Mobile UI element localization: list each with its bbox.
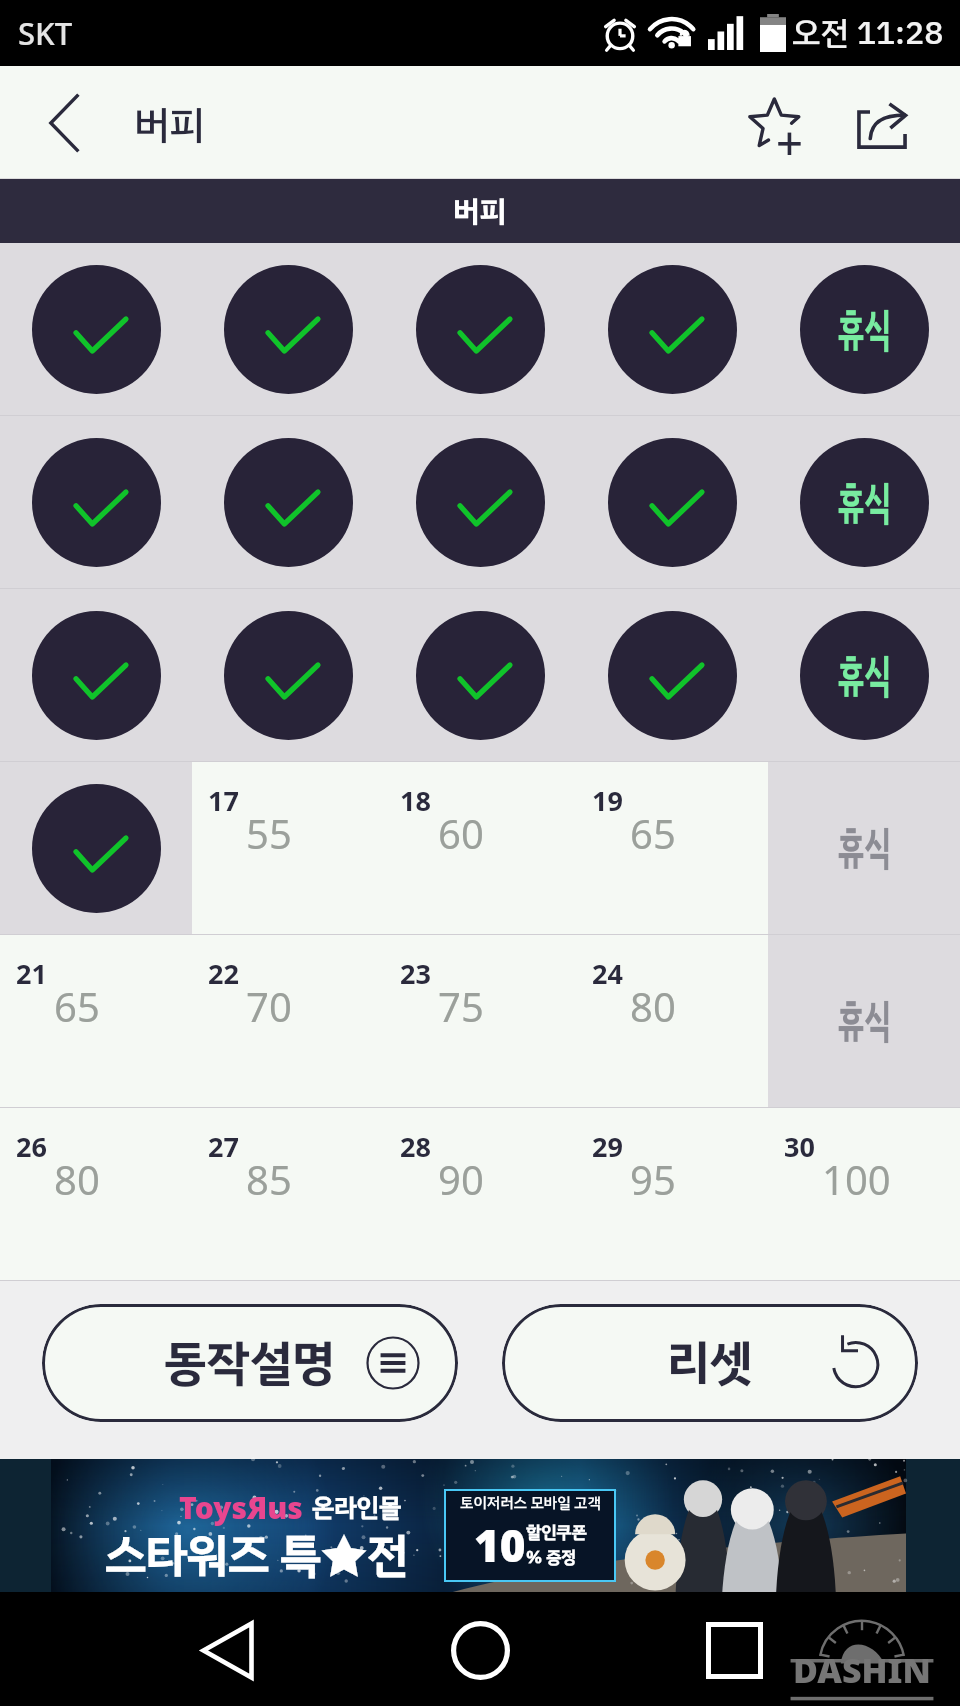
button[interactable]: 29 [576,1108,768,1280]
button[interactable]: 26 [0,1108,192,1280]
staticText: 75 [438,979,484,1033]
button[interactable] [384,416,576,588]
button[interactable]: 휴식 [768,935,960,1107]
button[interactable] [0,243,192,415]
button[interactable] [576,589,768,761]
staticText: 60 [438,806,484,860]
button[interactable] [0,589,192,761]
button[interactable]: 휴식 [768,589,960,761]
staticText: 버피 [453,189,507,234]
staticText: 휴식 [838,814,891,882]
staticText: % 증정 [526,1545,577,1570]
staticText: 27 [208,1128,239,1165]
button[interactable]: 휴식 [768,243,960,415]
button[interactable]: Recents [684,1606,784,1695]
button[interactable]: 휴식 [768,762,960,934]
staticText: 95 [630,1152,676,1206]
staticText: 10 [474,1515,526,1575]
staticText: 18 [400,782,431,819]
button[interactable]: 동작설명 [42,1304,458,1422]
button[interactable]: 28 [384,1108,576,1280]
staticText: 28 [400,1128,431,1165]
button[interactable]: 27 [192,1108,384,1280]
button[interactable]: 휴식 [768,416,960,588]
staticText: 휴식 [838,296,891,364]
button[interactable] [192,243,384,415]
staticText: 동작설명 [164,1327,336,1399]
button[interactable] [576,243,768,415]
staticText: 26 [16,1128,47,1165]
button[interactable] [192,416,384,588]
staticText: 90 [438,1152,484,1206]
staticText: 스타워즈 특★전 [105,1521,409,1590]
staticText: 21 [16,955,47,992]
staticText: 17 [208,782,239,819]
button[interactable]: 24 [576,935,768,1107]
staticText: 할인쿠폰 [526,1520,587,1545]
staticText: 휴식 [838,642,891,710]
button[interactable]: Advertisement [0,1459,960,1592]
staticText: ToysЯus [179,1487,303,1528]
button[interactable]: 22 [192,935,384,1107]
staticText: 80 [54,1152,100,1206]
button[interactable] [384,589,576,761]
staticText: 온라인몰 [312,1489,402,1527]
button[interactable] [384,243,576,415]
button[interactable] [0,416,192,588]
button[interactable]: 리셋 [502,1304,918,1422]
button[interactable]: 19 [576,762,768,934]
staticText: 100 [822,1152,891,1206]
button[interactable]: Home [430,1606,530,1695]
button[interactable]: 18 [384,762,576,934]
staticText: DASHIN [793,1647,931,1693]
button[interactable]: Add to favorites [722,66,828,179]
staticText: 19 [592,782,623,819]
staticText: 휴식 [838,987,891,1055]
button[interactable]: 17 [192,762,384,934]
button[interactable]: Back [177,1606,277,1695]
staticText: 65 [630,806,676,860]
button[interactable] [0,762,192,934]
staticText: 70 [246,979,292,1033]
button[interactable] [192,589,384,761]
button[interactable]: 21 [0,935,192,1107]
staticText: 23 [400,955,431,992]
staticText: 토이저러스 모바일 고객 [460,1492,601,1515]
staticText: 65 [54,979,100,1033]
staticText: 29 [592,1128,623,1165]
button[interactable]: 30 [768,1108,960,1280]
staticText: 85 [246,1152,292,1206]
staticText: 24 [592,955,623,992]
staticText: 휴식 [838,469,891,537]
staticText: 80 [630,979,676,1033]
staticText: 버피 [134,96,206,156]
staticText: 55 [246,806,292,860]
button[interactable] [576,416,768,588]
staticText: SKT [18,12,73,54]
staticText: 30 [784,1128,815,1165]
staticText: 22 [208,955,239,992]
staticText: 리셋 [667,1327,753,1399]
button[interactable]: Share [828,66,934,179]
button[interactable]: 23 [384,935,576,1107]
staticText: 오전 11:28 [792,9,944,57]
button[interactable]: Back [0,66,128,179]
